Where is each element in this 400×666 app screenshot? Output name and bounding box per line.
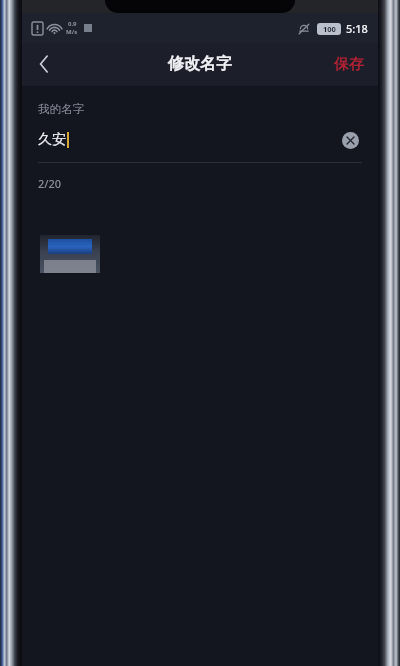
staticText: 修改名字	[168, 54, 232, 74]
staticText: 保存	[334, 55, 364, 74]
staticText: 久安	[38, 131, 66, 149]
staticText: 我的名字	[38, 102, 84, 116]
button[interactable]: Clear text	[338, 128, 362, 152]
button[interactable]: 保存	[320, 43, 378, 85]
staticText: 5:18	[346, 21, 368, 36]
staticText: 2/20	[38, 176, 62, 191]
button[interactable]: Image thumbnail	[40, 235, 100, 273]
staticText: 0.9	[68, 20, 77, 28]
staticText: 100	[323, 24, 336, 34]
staticText: M/s	[66, 28, 78, 36]
button[interactable]: Back	[22, 43, 66, 85]
